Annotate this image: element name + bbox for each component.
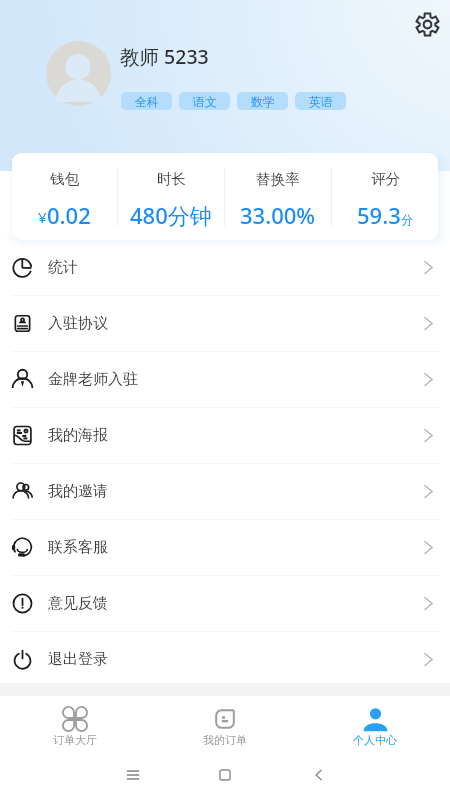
staticText: 59.3: [357, 200, 401, 230]
button[interactable]: 个人中心: [300, 696, 450, 750]
button[interactable]: 我的邀请: [0, 464, 450, 520]
button[interactable]: 统计: [0, 240, 450, 296]
button[interactable]: Menu: [124, 766, 142, 784]
staticText: 时长: [157, 170, 186, 188]
staticText: 退出登录: [48, 650, 108, 669]
button[interactable]: 联系客服: [0, 520, 450, 576]
button[interactable]: 退出登录: [0, 632, 450, 688]
staticText: 全科: [135, 94, 159, 109]
staticText: 我的邀请: [48, 482, 108, 501]
staticText: 金牌老师入驻: [48, 370, 138, 389]
staticText: ¥: [38, 207, 47, 227]
staticText: 我的海报: [48, 426, 108, 445]
staticText: 分: [401, 212, 413, 227]
button[interactable]: 意见反馈: [0, 576, 450, 632]
staticText: 0.02: [47, 200, 91, 230]
staticText: 33.00%: [240, 200, 316, 230]
button[interactable]: 入驻协议: [0, 296, 450, 352]
staticText: 统计: [48, 258, 78, 277]
staticText: 评分: [371, 170, 400, 188]
button[interactable]: 全科: [121, 92, 172, 110]
button[interactable]: Settings: [410, 7, 445, 42]
staticText: 入驻协议: [48, 314, 108, 333]
staticText: 联系客服: [48, 538, 108, 557]
staticText: 数学: [251, 94, 275, 109]
button[interactable]: Back: [310, 766, 328, 784]
button[interactable]: 数学: [237, 92, 288, 110]
staticText: 480分钟: [130, 200, 212, 230]
staticText: 钱包: [50, 170, 79, 188]
staticText: 我的订单: [203, 733, 247, 747]
staticText: 意见反馈: [48, 594, 108, 613]
button[interactable]: 金牌老师入驻: [0, 352, 450, 408]
staticText: 个人中心: [353, 733, 397, 747]
button[interactable]: 语文: [179, 92, 230, 110]
staticText: 语文: [193, 94, 217, 109]
button[interactable]: 订单大厅: [0, 696, 150, 750]
staticText: 教师 5233: [120, 43, 209, 70]
staticText: 英语: [309, 94, 333, 109]
button[interactable]: 英语: [295, 92, 346, 110]
button[interactable]: 我的海报: [0, 408, 450, 464]
button[interactable]: Home: [216, 766, 234, 784]
staticText: 订单大厅: [53, 733, 97, 747]
button[interactable]: 我的订单: [150, 696, 300, 750]
staticText: 替换率: [256, 170, 300, 188]
